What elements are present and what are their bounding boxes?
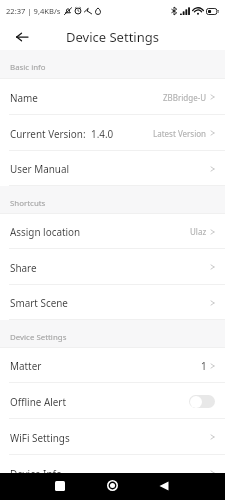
button[interactable]: User Manual	[0, 151, 225, 186]
staticText: User Manual	[10, 162, 70, 175]
staticText: Current Version:	[10, 127, 86, 140]
button[interactable]: Assign location	[0, 214, 225, 249]
staticText: Offline Alert	[10, 395, 67, 408]
staticText: 1	[201, 359, 207, 372]
staticText: Matter	[10, 359, 42, 372]
button[interactable]: Back	[10, 25, 34, 49]
staticText: Smart Scene	[10, 296, 68, 309]
button[interactable]: Matter	[0, 348, 225, 383]
button[interactable]: Device Info	[0, 455, 225, 491]
button[interactable]: Name	[0, 79, 225, 115]
staticText: Device Settings	[66, 28, 159, 46]
button[interactable]: Offline Alert	[0, 383, 225, 419]
staticText: Device Settings	[10, 332, 67, 343]
staticText: Device Info	[10, 467, 62, 480]
button[interactable]: Recents	[50, 476, 70, 496]
staticText: WiFi Settings	[10, 431, 70, 444]
button[interactable]: Share	[0, 249, 225, 285]
staticText: ZBBridge-U	[163, 92, 207, 103]
staticText: 22:37 | 9,4KB/s	[6, 6, 61, 16]
button[interactable]: Current Version:	[0, 115, 225, 151]
staticText: Basic info	[10, 62, 46, 73]
staticText: Assign location	[10, 225, 81, 238]
button[interactable]: WiFi Settings	[0, 419, 225, 455]
button[interactable]: Smart Scene	[0, 285, 225, 320]
staticText: Share	[10, 261, 37, 274]
button[interactable]: Offline Alert	[189, 395, 215, 408]
staticText: Shortcuts	[10, 198, 46, 209]
staticText: Latest Version	[153, 128, 207, 139]
button[interactable]: Home	[102, 475, 122, 495]
staticText: Ulaz	[190, 226, 207, 237]
button[interactable]: Back	[154, 476, 174, 496]
staticText: Name	[10, 91, 38, 104]
staticText: 1.4.0	[91, 127, 114, 140]
